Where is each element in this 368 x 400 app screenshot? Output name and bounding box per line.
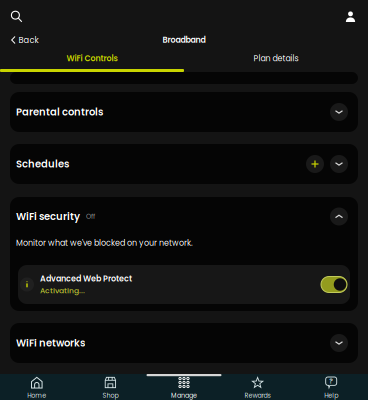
button[interactable]: Manage <box>147 374 221 400</box>
button[interactable]: Expand Parental controls <box>330 103 348 121</box>
staticText: Shop <box>102 391 118 400</box>
button[interactable]: Account <box>337 0 368 31</box>
staticText: Off <box>86 212 95 221</box>
button[interactable]: Home <box>0 374 74 400</box>
button[interactable]: Advanced Web Protect <box>18 265 350 304</box>
staticText: WiFi Controls <box>66 53 117 64</box>
staticText: Activating... <box>40 285 85 296</box>
button[interactable]: Rewards <box>221 374 294 400</box>
button[interactable]: Schedules <box>10 144 358 184</box>
staticText: Schedules <box>16 157 69 171</box>
staticText: Rewards <box>245 391 271 400</box>
staticText: Manage <box>171 391 197 400</box>
staticText: WiFi security <box>16 209 80 223</box>
button[interactable]: Shop <box>74 374 147 400</box>
button[interactable]: WiFi Controls <box>0 49 184 68</box>
staticText: Back <box>19 34 39 46</box>
button[interactable]: Back <box>0 30 47 50</box>
staticText: ? <box>329 376 333 386</box>
staticText: Advanced Web Protect <box>40 273 132 284</box>
staticText: Parental controls <box>16 105 103 119</box>
button[interactable]: Expand WiFi networks <box>330 334 348 352</box>
button[interactable]: Plan details <box>184 49 368 68</box>
button[interactable]: Search <box>0 0 30 31</box>
button[interactable]: Expand Schedules <box>330 155 348 173</box>
button[interactable]: Add schedule <box>306 155 324 173</box>
staticText: Broadband <box>162 34 205 46</box>
staticText: Home <box>27 391 46 400</box>
button[interactable]: Collapse WiFi security <box>330 207 348 225</box>
staticText: Help <box>324 391 338 400</box>
staticText: Monitor what we've blocked on your netwo… <box>16 237 193 249</box>
staticText: WiFi networks <box>16 336 85 350</box>
button[interactable]: Parental controls <box>10 92 358 132</box>
staticText: Plan details <box>253 53 298 64</box>
button[interactable]: ? <box>294 374 368 400</box>
button[interactable]: WiFi networks <box>10 323 358 363</box>
